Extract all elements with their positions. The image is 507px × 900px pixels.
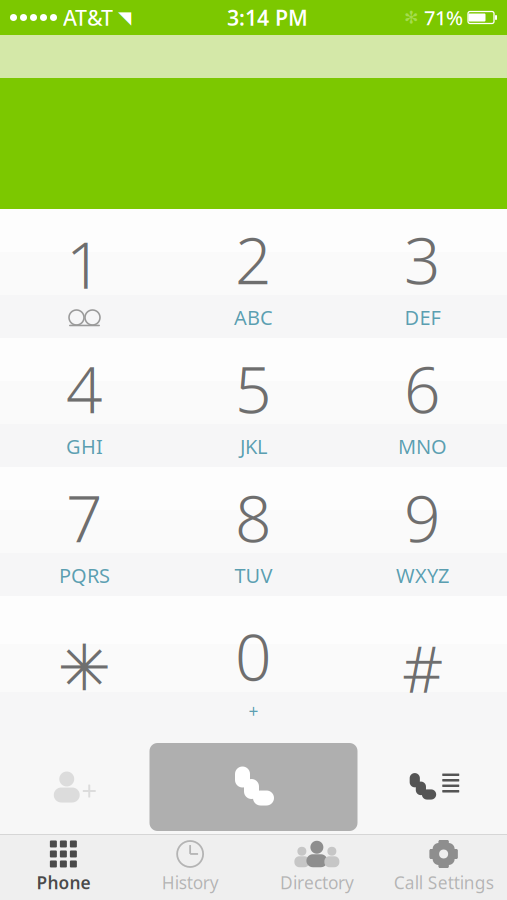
staticText: JKL (240, 433, 267, 460)
staticText: 7 (66, 475, 103, 560)
staticText: History (162, 871, 219, 894)
staticText: GHI (66, 433, 103, 460)
button[interactable]: ✳ (0, 596, 169, 740)
button[interactable]: 7 (0, 467, 169, 596)
staticText: Directory (280, 871, 354, 894)
staticText: TUV (234, 562, 272, 589)
button[interactable]: 9 (338, 467, 507, 596)
button[interactable]: 1 (0, 209, 169, 338)
staticText: PQRS (59, 562, 110, 589)
button[interactable]: 0 (169, 596, 338, 740)
button[interactable]: 3 (338, 209, 507, 338)
button[interactable]: 4 (0, 338, 169, 467)
staticText: 1 (66, 221, 103, 306)
staticText: ABC (234, 304, 273, 331)
staticText: # (402, 625, 443, 710)
staticText: ✳ (57, 632, 111, 704)
staticText: 8 (235, 475, 272, 560)
staticText: 5 (235, 346, 272, 431)
staticText: DEF (404, 304, 440, 331)
staticText: 4 (66, 346, 103, 431)
staticText: MNO (398, 433, 447, 460)
staticText: 6 (404, 346, 441, 431)
button[interactable]: 6 (338, 338, 507, 467)
button[interactable]: Phone (0, 835, 127, 899)
staticText: 3:14 PM (227, 3, 308, 32)
button[interactable]: # (338, 596, 507, 740)
staticText: 9 (404, 475, 441, 560)
button[interactable]: Recent Calls (357, 740, 507, 834)
staticText: Call Settings (394, 871, 494, 894)
button[interactable]: History (127, 835, 254, 899)
button[interactable]: 8 (169, 467, 338, 596)
button[interactable]: 5 (169, 338, 338, 467)
staticText: ◥ (118, 8, 131, 27)
button[interactable]: Add Contact (0, 740, 149, 834)
staticText: 2 (235, 217, 272, 302)
staticText: + (248, 699, 258, 722)
button[interactable]: Directory (253, 835, 380, 899)
staticText: AT&T (63, 3, 113, 32)
staticText: 0 (235, 613, 272, 698)
staticText: 71% (424, 4, 463, 31)
button[interactable]: 2 (169, 209, 338, 338)
staticText: Phone (36, 871, 90, 894)
staticText: WXYZ (396, 562, 449, 589)
button[interactable]: Call Settings (380, 835, 507, 899)
button[interactable]: Call (149, 743, 357, 831)
staticText: ✻ (404, 8, 419, 27)
staticText: 3 (404, 217, 441, 302)
